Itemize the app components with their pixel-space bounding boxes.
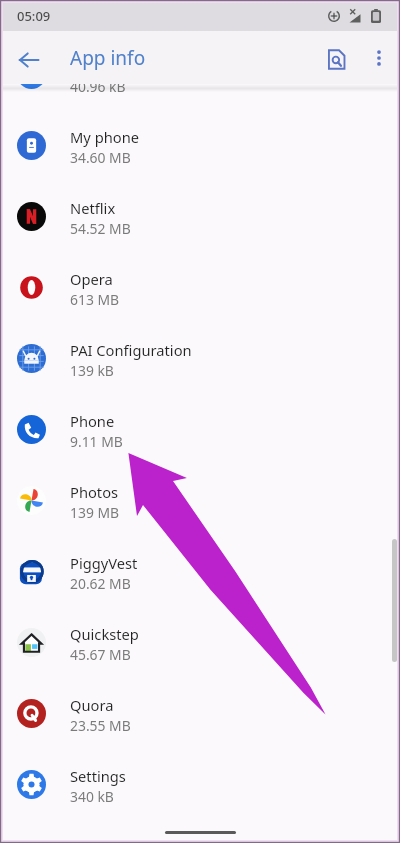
button[interactable]: Netflix [0,176,400,247]
staticText: 40.96 kB [70,84,126,96]
staticText: 139 kB [70,361,114,380]
button[interactable]: More options [360,39,398,77]
staticText: My phone [70,127,139,147]
staticText: 9.11 MB [70,432,123,451]
staticText: PAI Configuration [70,340,192,360]
staticText: Netflix [70,198,116,218]
staticText: 20.62 MB [70,574,131,593]
staticText: Photos [70,482,119,502]
staticText: Quickstep [70,624,139,644]
button[interactable]: PAI Configuration [0,318,400,389]
staticText: 54.52 MB [70,219,131,238]
button[interactable]: Music [0,84,400,105]
staticText: 613 MB [70,290,120,309]
staticText: 139 MB [70,503,120,522]
button[interactable]: Quora [0,673,400,744]
staticText: PiggyVest [70,553,138,573]
staticText: Quora [70,695,114,715]
staticText: App info [70,45,146,71]
staticText: 340 kB [70,787,114,806]
staticText: 05:09 [17,7,51,25]
button[interactable]: Phone [0,389,400,460]
staticText: Settings [70,766,126,786]
button[interactable]: Opera [0,247,400,318]
staticText: 45.67 MB [70,645,131,664]
staticText: Opera [70,269,113,289]
button[interactable]: Quickstep [0,602,400,673]
button[interactable]: Search in page [316,39,356,79]
button[interactable]: Settings [0,744,400,792]
staticText: 34.60 MB [70,148,131,167]
button[interactable]: Photos [0,460,400,531]
button[interactable]: PiggyVest [0,531,400,602]
staticText: 23.55 MB [70,716,131,735]
button[interactable]: My phone [0,105,400,176]
staticText: Phone [70,411,115,431]
button[interactable]: Back [8,39,50,81]
